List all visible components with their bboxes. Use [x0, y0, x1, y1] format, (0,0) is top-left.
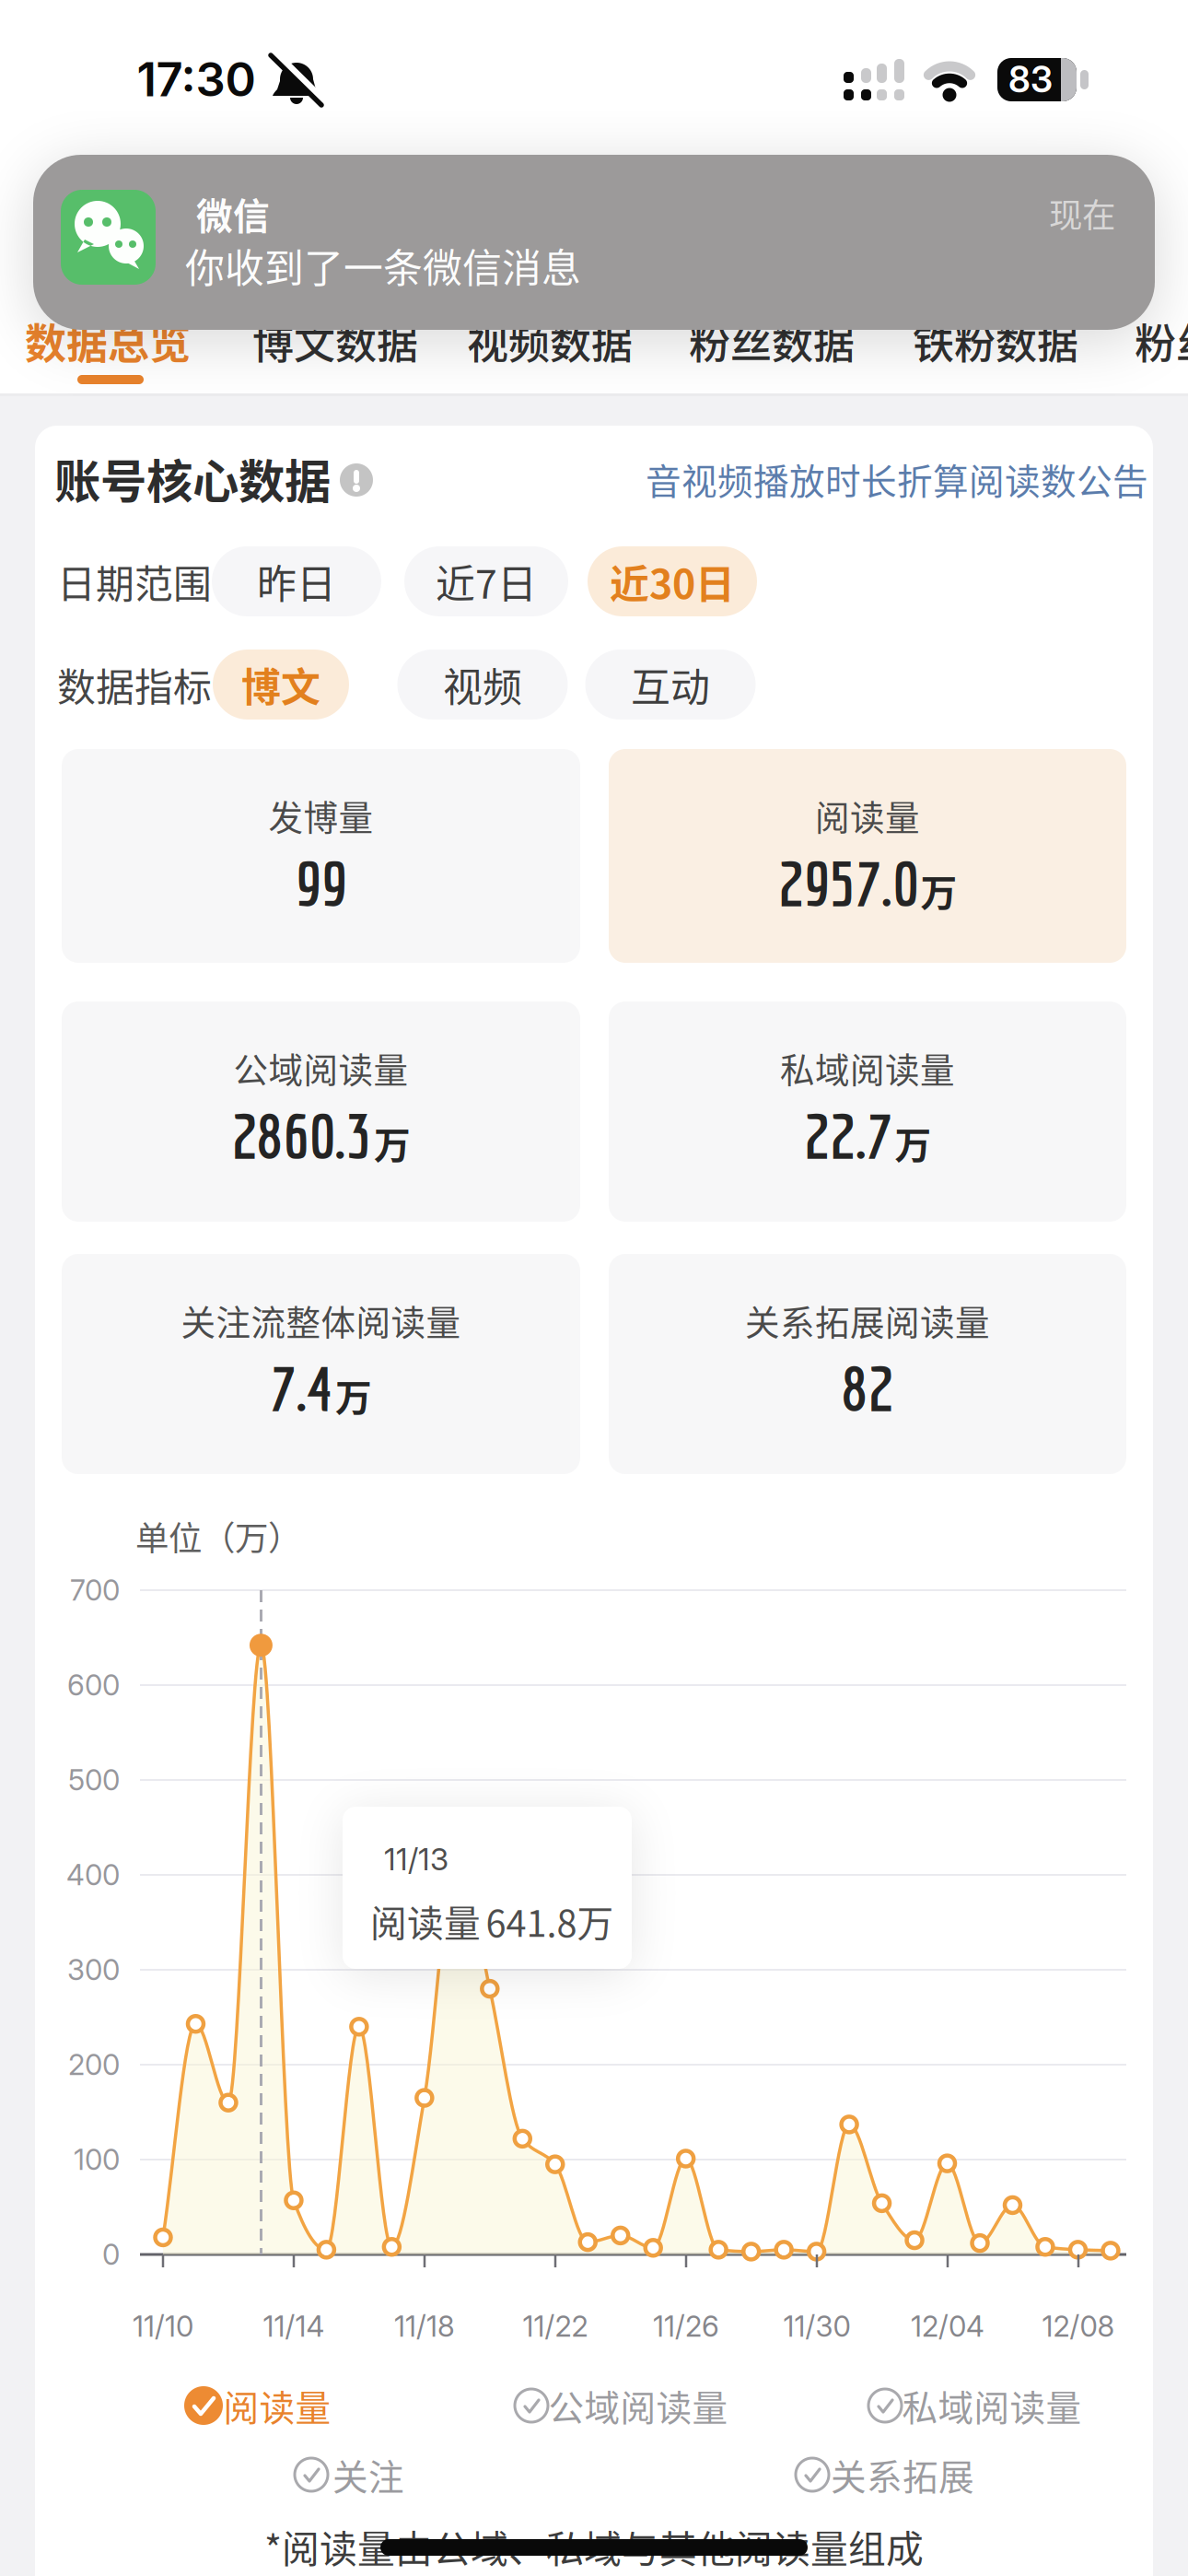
staticText: 关注 [332, 2449, 404, 2500]
staticText: 互动 [631, 656, 710, 713]
staticText: 铁粉数据 [913, 311, 1078, 371]
staticText: 641.8万 [486, 1895, 614, 1947]
staticText: 粉丝数据 [689, 311, 855, 371]
staticText: 近30日 [610, 553, 735, 610]
staticText: 99 [295, 846, 347, 919]
staticText: 11/10 [133, 2309, 193, 2344]
button[interactable]: 数据总览 [25, 311, 191, 371]
staticText: 2860.3 [231, 1099, 371, 1171]
button[interactable]: 近30日 [588, 546, 757, 616]
button[interactable]: 关系拓展阅读量 [609, 1254, 1126, 1474]
button[interactable]: 阅读量 [183, 2383, 327, 2428]
staticText: 100 [74, 2142, 120, 2177]
staticText: 关注流整体阅读量 [181, 1295, 461, 1345]
button[interactable]: 关注流整体阅读量 [62, 1254, 580, 1474]
staticText: 私域阅读量 [780, 1043, 955, 1093]
staticText: 视频 [443, 656, 522, 713]
staticText: 数据总览 [25, 311, 191, 371]
button[interactable]: 视频数据 [467, 311, 633, 371]
staticText: 500 [68, 1763, 120, 1797]
staticText: 83 [1008, 57, 1053, 101]
staticText: 公域阅读量 [548, 2380, 728, 2431]
staticText: 账号核心数据 [54, 445, 331, 512]
staticText: 公域阅读量 [233, 1043, 408, 1093]
button[interactable]: 关系拓展 [792, 2453, 969, 2497]
button[interactable]: 近7日 [404, 546, 568, 616]
staticText: 现在 [1049, 189, 1115, 237]
staticText: 11/18 [394, 2309, 455, 2344]
button[interactable]: 微信 [33, 155, 1155, 330]
staticText: 微信 [196, 187, 270, 240]
button[interactable]: 公域阅读量 [62, 1001, 580, 1222]
staticText: 82 [842, 1351, 893, 1424]
staticText: 数据指标 [57, 657, 212, 712]
button[interactable]: 音视频播放时长折算阅读数公告 [646, 453, 1148, 505]
staticText: 万 [374, 1116, 411, 1169]
button[interactable]: 公域阅读量 [511, 2383, 721, 2428]
staticText: 11/13 [384, 1841, 448, 1878]
staticText: 300 [67, 1952, 120, 1987]
button[interactable]: 私域阅读量 [865, 2383, 1075, 2428]
staticText: 阅读量 [815, 790, 920, 840]
staticText: 昨日 [257, 553, 336, 610]
button[interactable]: 铁粉数据 [913, 311, 1078, 371]
staticText: 11/26 [653, 2309, 719, 2344]
staticText: *阅读量由公域、私域与其他阅读量组成 [264, 2519, 924, 2574]
staticText: 音视频播放时长折算阅读数公告 [646, 453, 1148, 505]
staticText: 11/14 [263, 2309, 325, 2344]
button[interactable]: 博文数据 [252, 311, 418, 371]
staticText: 你收到了一条微信消息 [185, 237, 581, 294]
staticText: 博文 [241, 656, 320, 713]
button[interactable] [340, 463, 373, 497]
staticText: 阅读量 [223, 2380, 331, 2431]
staticText: 日期范围 [57, 553, 212, 609]
staticText: 阅读量 [370, 1895, 481, 1947]
button[interactable]: 阅读量 [609, 749, 1126, 963]
staticText: 12/04 [911, 2309, 984, 2344]
staticText: 私域阅读量 [902, 2380, 1082, 2431]
button[interactable]: 私域阅读量 [609, 1001, 1126, 1222]
button[interactable]: 互动 [585, 650, 756, 720]
staticText: 700 [70, 1573, 120, 1608]
button[interactable]: 昨日 [212, 546, 381, 616]
staticText: 11/22 [523, 2309, 588, 2344]
staticText: 400 [66, 1858, 120, 1892]
staticText: 万 [895, 1116, 932, 1169]
staticText: 博文数据 [252, 311, 418, 371]
staticText: 单位（万） [135, 1512, 301, 1560]
staticText: 0 [102, 2237, 120, 2272]
staticText: 2957.0 [778, 846, 918, 919]
button[interactable]: 发博量 [62, 749, 580, 963]
staticText: 200 [68, 2047, 120, 2082]
staticText: 11/30 [783, 2309, 850, 2344]
staticText: 视频数据 [467, 311, 633, 371]
staticText: 万 [920, 864, 957, 917]
button[interactable]: 粉丝数据 [689, 311, 855, 371]
staticText: 关系拓展 [831, 2449, 974, 2500]
staticText: 600 [67, 1668, 120, 1703]
staticText: 7.4 [270, 1351, 332, 1424]
button[interactable]: 博文 [213, 650, 349, 720]
staticText: 万 [335, 1369, 372, 1422]
staticText: 关系拓展阅读量 [745, 1295, 990, 1345]
staticText: 17:30 [137, 51, 256, 107]
staticText: 粉丝数据 [1135, 311, 1188, 371]
staticText: 近7日 [436, 553, 537, 610]
button[interactable]: 关注 [291, 2453, 402, 2497]
staticText: 发博量 [268, 790, 373, 840]
button[interactable]: 粉丝数据 [1135, 311, 1188, 371]
button[interactable]: 视频 [397, 650, 568, 720]
staticText: 22.7 [804, 1099, 892, 1171]
staticText: 12/08 [1042, 2309, 1115, 2344]
